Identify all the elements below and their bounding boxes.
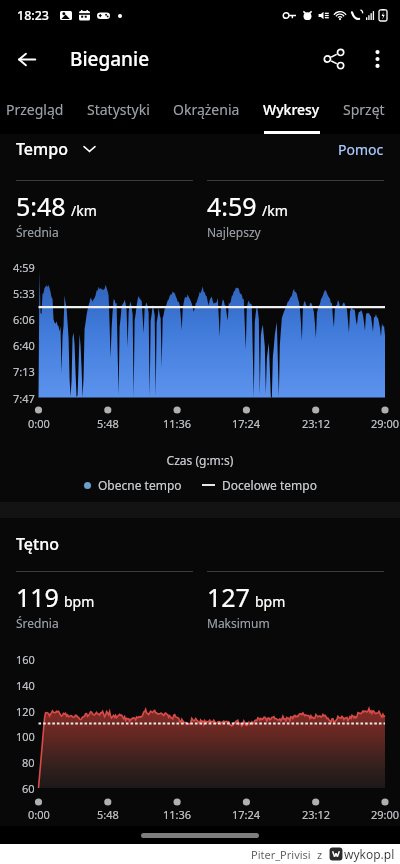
staticText: wykop.pl <box>344 846 395 862</box>
staticText: 11:36 <box>163 416 192 430</box>
button[interactable]: Pomoc <box>338 140 384 159</box>
button[interactable]: Przegląd <box>6 88 64 134</box>
staticText: 6:06 <box>13 312 35 326</box>
button[interactable]: Wykresy <box>263 88 320 134</box>
staticText: Okrążenia <box>173 100 240 119</box>
staticText: 0:00 <box>28 416 50 430</box>
staticText: 140 <box>16 678 35 692</box>
staticText: 120 <box>16 704 35 718</box>
button[interactable]: Statystyki <box>87 88 150 134</box>
staticText: Najlepszy <box>207 224 261 240</box>
staticText: 7:13 <box>13 364 35 378</box>
staticText: 7:47 <box>13 391 35 405</box>
button[interactable]: Sprzęt <box>343 88 385 134</box>
staticText: bpm <box>64 592 95 611</box>
staticText: 80 <box>22 755 35 769</box>
staticText: Średnia <box>16 224 59 240</box>
staticText: 29:00 <box>371 807 400 821</box>
staticText: Średnia <box>16 615 59 631</box>
staticText: 18:23 <box>17 7 50 24</box>
staticText: Pomoc <box>338 140 384 159</box>
staticText: 127 <box>207 580 250 614</box>
button[interactable]: Back <box>0 32 54 86</box>
staticText: Docelowe tempo <box>222 477 317 493</box>
staticText: 6:40 <box>13 338 35 352</box>
staticText: 5:48 <box>97 416 119 430</box>
button[interactable]: Share <box>311 36 357 82</box>
staticText: 5:48 <box>16 189 66 223</box>
staticText: 23:12 <box>302 416 331 430</box>
staticText: 29:00 <box>371 416 400 430</box>
staticText: Tempo <box>16 138 68 160</box>
staticText: /km <box>71 201 97 220</box>
staticText: Maksimum <box>207 615 270 631</box>
staticText: Tętno <box>16 533 59 555</box>
staticText: 23:12 <box>302 807 331 821</box>
staticText: 17:24 <box>232 807 261 821</box>
staticText: 60 <box>22 781 35 795</box>
staticText: Czas (g:m:s) <box>0 452 400 468</box>
staticText: Bieganie <box>70 46 150 72</box>
staticText: 5:48 <box>97 807 119 821</box>
staticText: 17:24 <box>232 416 261 430</box>
staticText: 119 <box>16 580 59 614</box>
staticText: 5:33 <box>13 286 35 300</box>
staticText: Sprzęt <box>343 100 385 119</box>
staticText: 0:00 <box>28 807 50 821</box>
button[interactable]: Tempo <box>16 138 96 160</box>
staticText: Obecne tempo <box>98 477 182 493</box>
button[interactable]: More options <box>357 39 397 79</box>
staticText: Przegląd <box>6 100 64 119</box>
staticText: /km <box>262 201 288 220</box>
staticText: 4:59 <box>13 260 35 274</box>
staticText: Piter_Privisi <box>251 847 311 862</box>
staticText: bpm <box>255 592 286 611</box>
staticText: 4:59 <box>207 189 257 223</box>
staticText: Statystyki <box>87 100 150 119</box>
staticText: 160 <box>16 652 35 666</box>
staticText: z <box>317 847 323 862</box>
staticText: 11:36 <box>163 807 192 821</box>
staticText: 100 <box>16 729 35 743</box>
staticText: Wykresy <box>263 100 320 119</box>
button[interactable]: Okrążenia <box>173 88 240 134</box>
